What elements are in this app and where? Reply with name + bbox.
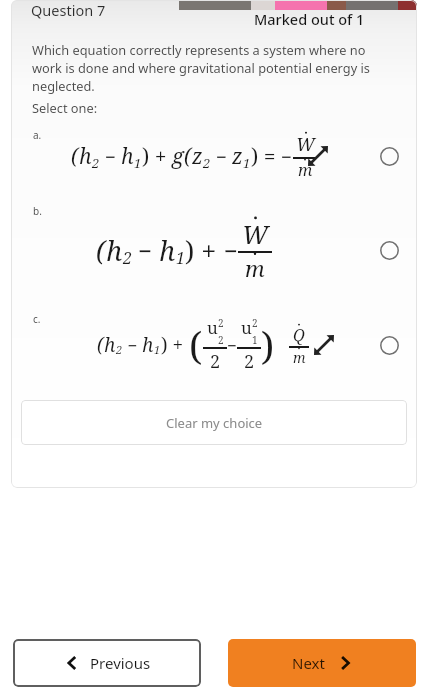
button[interactable]: Select answer xyxy=(376,332,402,358)
staticText: u xyxy=(241,316,252,339)
staticText: − xyxy=(100,144,121,170)
staticText: u xyxy=(207,316,218,339)
staticText: − xyxy=(281,144,293,170)
staticText: h xyxy=(142,332,154,358)
staticText: − xyxy=(224,234,238,267)
staticText: W xyxy=(296,132,315,157)
staticText: ) + xyxy=(185,232,224,269)
staticText: h xyxy=(104,332,116,358)
staticText: − xyxy=(123,334,142,357)
staticText: c. xyxy=(33,312,41,326)
button[interactable]: Select answer xyxy=(376,237,402,263)
staticText: Question 7 xyxy=(31,0,106,20)
staticText: W xyxy=(242,217,269,251)
staticText: ( xyxy=(189,319,203,371)
staticText: 1 xyxy=(134,154,142,172)
staticText: b. xyxy=(33,204,42,218)
button[interactable]: Previous xyxy=(13,639,201,687)
staticText: m xyxy=(298,159,313,181)
staticText: 2 xyxy=(218,316,224,330)
staticText: z xyxy=(192,142,203,171)
staticText: − xyxy=(227,334,237,357)
staticText: Marked out of 1 xyxy=(254,9,365,29)
staticText: Select one: xyxy=(32,99,98,116)
staticText: 2 xyxy=(210,349,221,374)
button[interactable]: b. xyxy=(11,196,417,304)
staticText: 1 xyxy=(176,247,185,269)
staticText: ) = xyxy=(251,142,281,171)
button[interactable]: Clear my choice xyxy=(21,400,407,445)
staticText: ) + xyxy=(161,332,189,358)
staticText: a. xyxy=(33,128,42,142)
button[interactable]: Next xyxy=(228,639,416,687)
staticText: h xyxy=(79,142,92,171)
staticText: z xyxy=(232,142,243,171)
staticText: 2 xyxy=(244,349,255,374)
staticText: 2 xyxy=(92,154,100,172)
button[interactable]: c. xyxy=(11,304,417,386)
staticText: m xyxy=(293,348,306,367)
staticText: 2 xyxy=(203,154,211,172)
staticText: ) xyxy=(261,319,275,371)
staticText: ( xyxy=(96,232,106,269)
staticText: h xyxy=(159,232,176,269)
staticText: 2 xyxy=(218,333,224,347)
staticText: g xyxy=(172,142,184,171)
staticText: h xyxy=(121,142,134,171)
staticText: 1 xyxy=(252,333,258,347)
staticText: 1 xyxy=(243,154,251,172)
staticText: ( xyxy=(97,332,104,358)
button[interactable]: a. xyxy=(11,116,417,196)
staticText: Previous xyxy=(90,653,151,673)
staticText: m xyxy=(245,253,265,283)
staticText: 2 xyxy=(252,316,258,330)
staticText: ( xyxy=(184,142,192,171)
staticText: − xyxy=(132,234,159,267)
staticText: Clear my choice xyxy=(166,414,263,432)
staticText: h xyxy=(106,232,123,269)
staticText: ) + xyxy=(142,142,172,171)
staticText: 1 xyxy=(154,342,161,357)
staticText: Q xyxy=(293,324,305,346)
staticText: ( xyxy=(71,142,79,171)
staticText: Next xyxy=(292,653,325,673)
button[interactable]: Select answer xyxy=(376,143,402,169)
staticText: − xyxy=(211,144,232,170)
staticText: 2 xyxy=(116,342,123,357)
staticText: Which equation correctly represents a sy… xyxy=(32,41,391,95)
staticText: 2 xyxy=(123,247,132,269)
